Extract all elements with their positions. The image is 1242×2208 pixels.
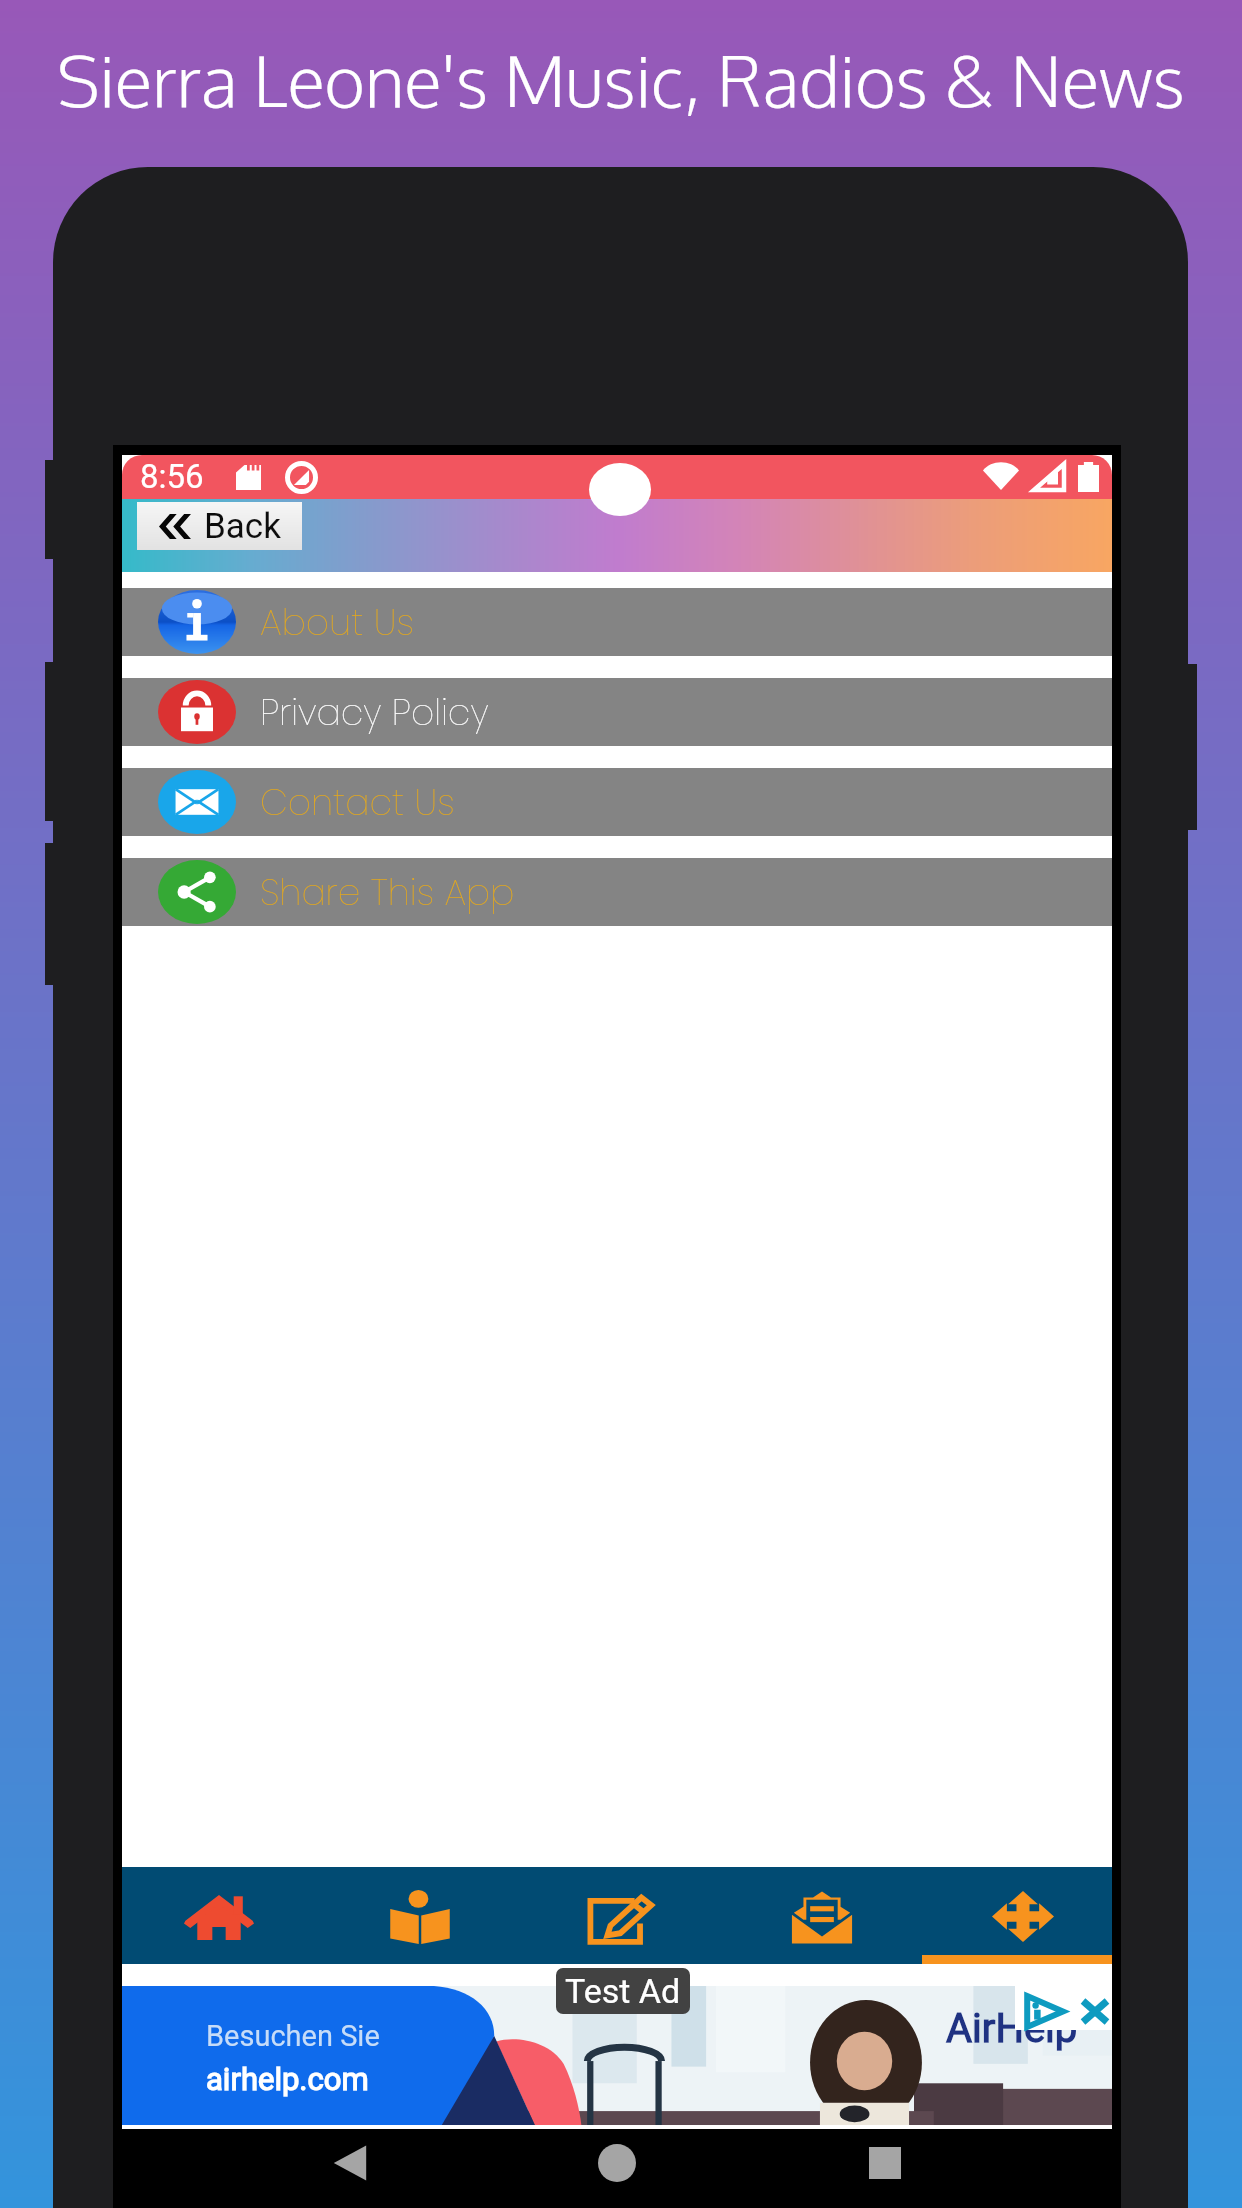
staticText: Besuchen Sie (206, 2019, 380, 2053)
button[interactable]: Home (577, 2123, 657, 2202)
button[interactable]: Recent apps (845, 2123, 925, 2202)
button[interactable]: Ad choices (1023, 1994, 1065, 2029)
button[interactable]: Home (122, 1867, 316, 1964)
button[interactable]: Radio stations (323, 1867, 517, 1964)
staticText: Contact Us (260, 777, 455, 827)
staticText: airhelp.com (206, 2061, 369, 2097)
button[interactable]: Share This App (122, 858, 1112, 926)
staticText: AirHelp (946, 2005, 1078, 2052)
button[interactable]: Close ad (1081, 1999, 1109, 2024)
button[interactable]: Besuchen Sie (122, 1986, 1112, 2125)
button[interactable]: Contact us (725, 1867, 919, 1964)
staticText: 8:56 (140, 457, 204, 496)
staticText: Back (204, 506, 281, 547)
staticText: About Us (260, 597, 414, 647)
button[interactable]: Back (137, 502, 302, 550)
staticText: Sierra Leone's Music, Radios & News (57, 35, 1185, 123)
button[interactable]: Contact Us (122, 768, 1112, 836)
button[interactable]: News (524, 1867, 718, 1964)
button[interactable]: About Us (122, 588, 1112, 656)
button[interactable]: More (926, 1867, 1120, 1964)
staticText: Share This App (260, 867, 515, 917)
button[interactable]: Privacy Policy (122, 678, 1112, 746)
staticText: Test Ad (565, 1971, 681, 2011)
staticText: Privacy Policy (260, 687, 489, 737)
button[interactable]: Back (310, 2123, 390, 2202)
